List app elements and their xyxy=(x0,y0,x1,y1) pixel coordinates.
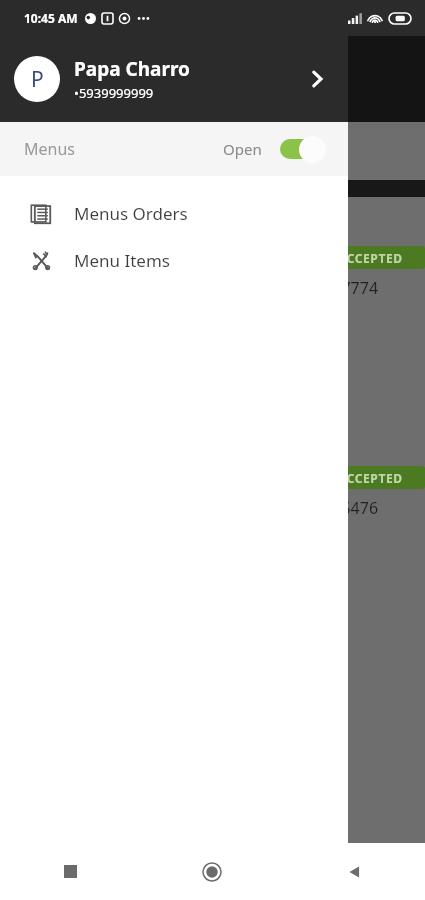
button[interactable]: Menu Items xyxy=(0,237,348,284)
staticText: Menus Orders xyxy=(74,202,188,225)
staticText: Papa Charro xyxy=(74,56,190,82)
staticText: 2107774 xyxy=(314,277,379,299)
staticText: 10:45 AM xyxy=(24,10,78,26)
button[interactable]: Menus xyxy=(0,122,348,176)
staticText: •5939999999 xyxy=(74,84,154,102)
staticText: P xyxy=(31,65,44,94)
button[interactable]: Toggle menus open xyxy=(278,134,328,164)
staticText: ACCEPTED xyxy=(338,250,403,266)
button[interactable]: Menus Orders xyxy=(0,190,348,237)
staticText: 2105476 xyxy=(314,497,379,519)
staticText: Open xyxy=(223,139,262,159)
button[interactable]: Home xyxy=(141,843,283,900)
staticText: Menus xyxy=(24,138,75,160)
staticText: Menu Items xyxy=(74,249,170,272)
staticText: ACCEPTED xyxy=(338,470,403,486)
button[interactable]: Back xyxy=(283,843,425,900)
button[interactable]: Recent apps xyxy=(0,843,141,900)
button[interactable]: P xyxy=(0,36,348,122)
other: Open profile xyxy=(300,62,334,96)
